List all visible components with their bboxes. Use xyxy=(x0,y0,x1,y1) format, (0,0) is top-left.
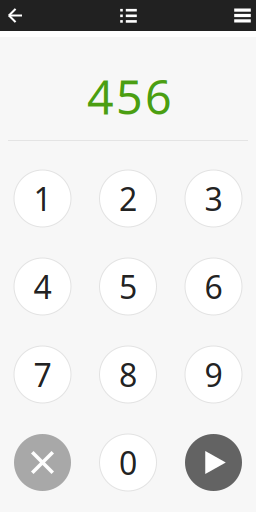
staticText: 5 xyxy=(119,265,137,308)
staticText: 6 xyxy=(204,265,222,308)
button[interactable]: Clear xyxy=(14,434,71,491)
staticText: 7 xyxy=(33,353,51,396)
button[interactable]: 9 xyxy=(185,346,242,403)
button[interactable]: 8 xyxy=(99,346,156,403)
staticText: 4 xyxy=(33,265,51,308)
button[interactable]: History xyxy=(116,0,141,31)
staticText: 9 xyxy=(204,353,222,396)
button[interactable]: 4 xyxy=(14,258,71,315)
button[interactable]: 3 xyxy=(185,170,242,227)
staticText: 456 xyxy=(87,65,172,127)
button[interactable]: 5 xyxy=(99,258,156,315)
button[interactable]: 2 xyxy=(99,170,156,227)
button[interactable]: Back xyxy=(0,0,30,31)
staticText: 2 xyxy=(119,177,137,220)
staticText: 8 xyxy=(119,353,137,396)
staticText: 3 xyxy=(204,177,222,220)
button[interactable]: 7 xyxy=(14,346,71,403)
button[interactable]: 1 xyxy=(14,170,71,227)
button[interactable]: Start xyxy=(185,434,242,491)
staticText: 0 xyxy=(119,441,137,484)
staticText: 1 xyxy=(33,177,51,220)
button[interactable]: 6 xyxy=(185,258,242,315)
button[interactable]: 0 xyxy=(99,434,156,491)
button[interactable]: Menu xyxy=(230,0,255,31)
